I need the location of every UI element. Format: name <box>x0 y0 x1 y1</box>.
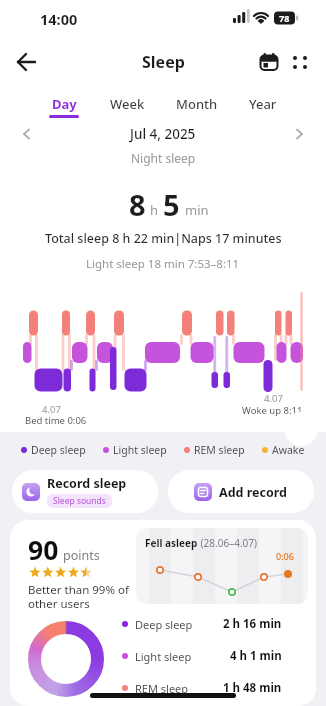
staticText: 5 <box>163 185 180 224</box>
staticText: Deep sleep <box>31 443 86 457</box>
button[interactable] <box>22 129 32 139</box>
staticText: points <box>63 547 100 564</box>
button[interactable]: Add record <box>168 470 314 513</box>
staticText: Light sleep <box>113 443 167 457</box>
staticText: REM sleep <box>194 443 245 457</box>
staticText: Record sleep <box>47 475 127 492</box>
staticText: Add record <box>219 484 288 501</box>
button[interactable]: Year <box>249 95 277 113</box>
staticText: Light sleep <box>135 649 192 664</box>
button[interactable]: Day <box>49 95 79 118</box>
staticText: Woke up 8:11 <box>242 404 303 417</box>
button[interactable] <box>292 54 308 70</box>
staticText: other users <box>28 596 90 612</box>
staticText: Deep sleep <box>135 617 193 632</box>
button[interactable] <box>294 129 304 139</box>
staticText: 1 h 48 min <box>223 680 282 696</box>
staticText: (28.06–4.07) <box>198 536 257 550</box>
staticText: 14:00 <box>40 9 78 29</box>
staticText: Sleep sounds <box>53 495 106 507</box>
button[interactable] <box>16 51 38 73</box>
button[interactable]: Record sleep <box>12 470 158 513</box>
staticText: Total sleep 8 h 22 min|Naps 17 minutes <box>45 230 282 247</box>
staticText: Awake <box>272 443 305 457</box>
staticText: Better than 99% of <box>28 582 129 598</box>
staticText: Bed time 0:06 <box>25 414 87 427</box>
staticText: Jul 4, 2025 <box>130 125 196 143</box>
staticText: min <box>185 201 209 219</box>
button[interactable]: Week <box>110 95 145 113</box>
staticText: 90 <box>28 532 59 568</box>
staticText: 78 <box>279 12 290 24</box>
staticText: 4.07 <box>42 403 61 416</box>
button[interactable]: 90 <box>10 520 316 706</box>
button[interactable]: Month <box>176 95 218 113</box>
staticText: REM sleep <box>135 681 189 696</box>
staticText: Day <box>52 95 77 113</box>
staticText: Light sleep 18 min 7:53–8:11 <box>86 256 240 272</box>
staticText: 8 <box>129 185 146 224</box>
staticText: 4.07 <box>264 392 283 405</box>
staticText: 0:06 <box>276 550 294 562</box>
staticText: 2 h 16 min <box>223 616 282 632</box>
staticText: Sleep <box>142 51 185 73</box>
staticText: h <box>150 201 159 219</box>
staticText: 4 h 1 min <box>230 648 282 664</box>
button[interactable] <box>260 53 278 71</box>
staticText: Fell asleep <box>145 536 198 550</box>
staticText: Night sleep <box>131 150 196 166</box>
